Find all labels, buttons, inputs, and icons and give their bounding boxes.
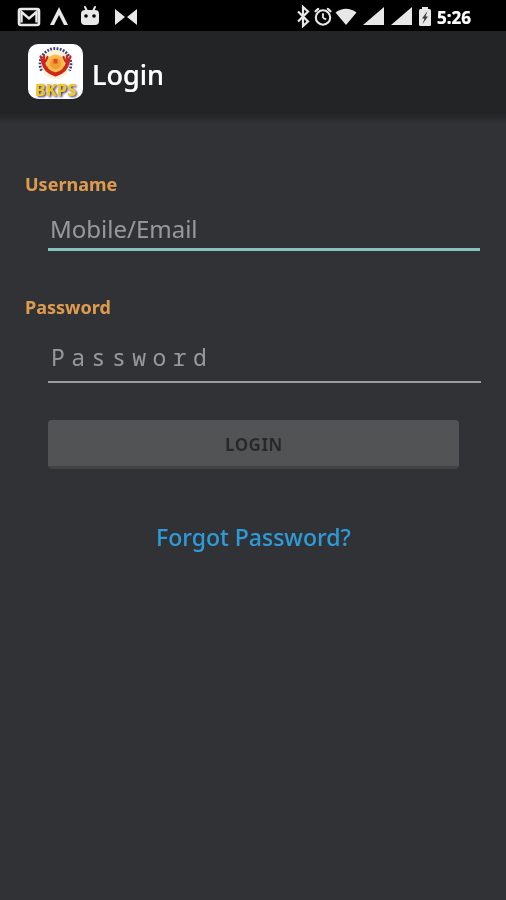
staticText: Password [51,341,214,372]
staticText: BKPS [35,79,77,99]
staticText: Mobile/Email [50,212,198,245]
button[interactable]: Password [48,337,481,379]
button[interactable]: Mobile/Email [48,208,481,250]
staticText: Forgot Password? [156,521,351,552]
staticText: Login [92,56,164,93]
staticText: 5:26 [437,6,471,29]
staticText: Password [25,295,111,320]
button[interactable]: LOGIN [48,420,459,469]
button[interactable]: Forgot Password? [0,521,506,552]
staticText: LOGIN [225,433,283,456]
staticText: Username [25,172,118,197]
